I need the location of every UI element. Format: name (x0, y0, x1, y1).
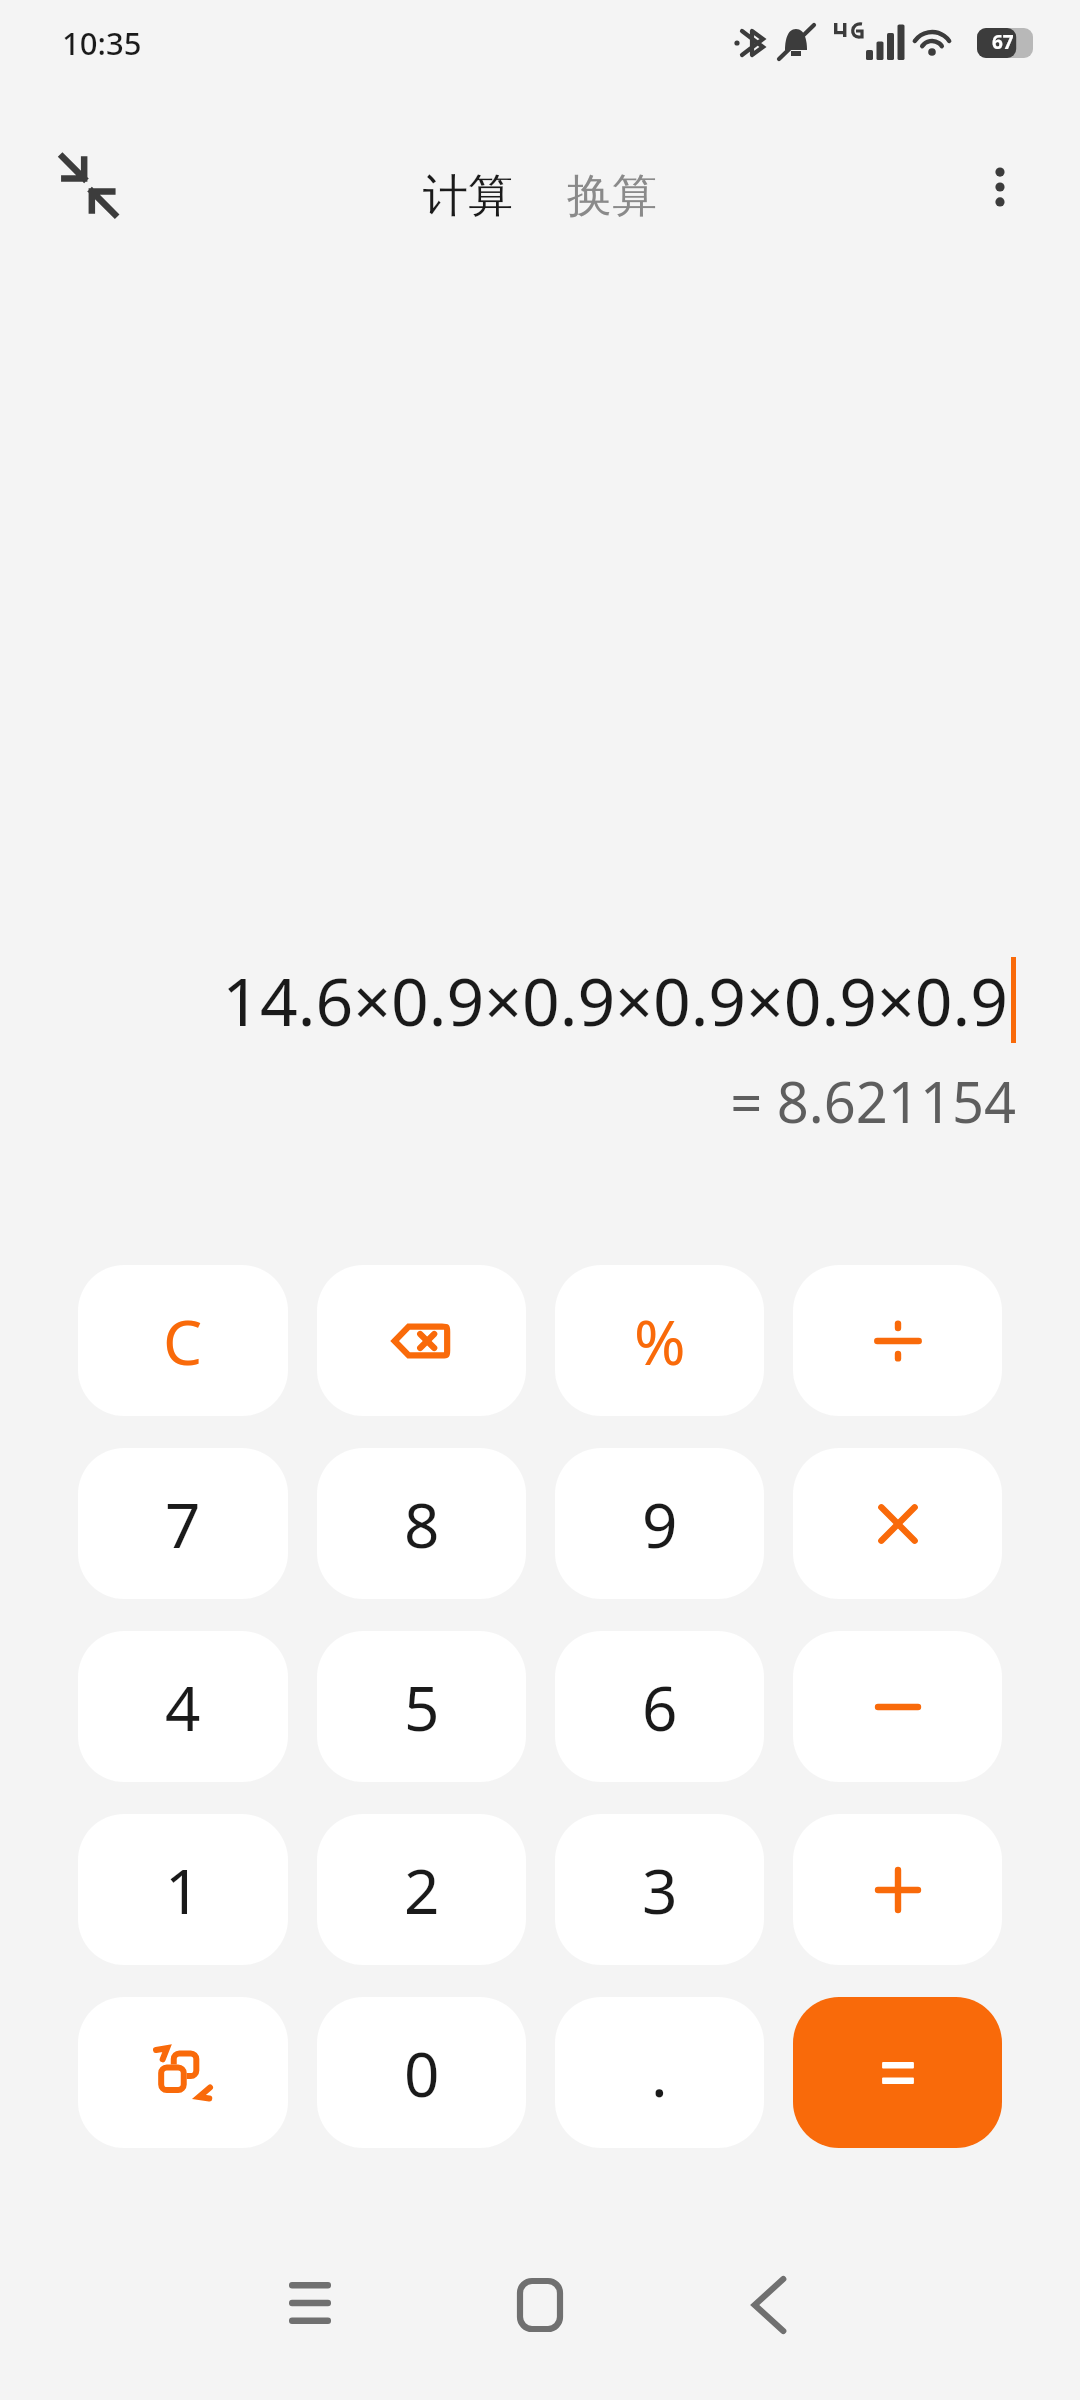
button[interactable]: 5 (317, 1631, 526, 1782)
button[interactable]: 6 (555, 1631, 764, 1782)
staticText: 14.6×0.9×0.9×0.9×0.9×0.9 (222, 955, 1008, 1045)
button[interactable]: Divide (793, 1265, 1002, 1416)
button[interactable]: Home (480, 2245, 600, 2365)
staticText: 2 (404, 1848, 440, 1932)
staticText: 9 (642, 1482, 678, 1566)
button[interactable]: 计算 (413, 164, 523, 229)
button[interactable]: Back (709, 2245, 829, 2365)
staticText: 换算 (567, 168, 657, 225)
staticText: % (634, 1299, 686, 1383)
staticText: 4 (165, 1665, 201, 1749)
button[interactable]: . (555, 1997, 764, 2148)
staticText: . (651, 2031, 668, 2115)
staticText: 0 (404, 2031, 440, 2115)
staticText: 3 (642, 1848, 678, 1932)
button[interactable]: 4 (78, 1631, 288, 1782)
staticText: C (163, 1299, 203, 1383)
button[interactable]: 换算 (557, 164, 667, 229)
button[interactable]: Recents (250, 2243, 370, 2363)
button[interactable]: More options (954, 141, 1046, 233)
staticText: 1 (165, 1848, 201, 1932)
button[interactable]: C (78, 1265, 288, 1416)
staticText: = 8.621154 (730, 1063, 1016, 1139)
button[interactable]: 0 (317, 1997, 526, 2148)
button[interactable]: Minus (793, 1631, 1002, 1782)
button[interactable]: 9 (555, 1448, 764, 1599)
button[interactable]: Plus (793, 1814, 1002, 1965)
staticText: 10:35 (62, 22, 142, 64)
button[interactable]: Multiply (793, 1448, 1002, 1599)
staticText: 6 (642, 1665, 678, 1749)
button[interactable]: 1 (78, 1814, 288, 1965)
button[interactable]: % (555, 1265, 764, 1416)
button[interactable]: Backspace (317, 1265, 526, 1416)
button[interactable]: Convert (78, 1997, 288, 2148)
button[interactable]: 7 (78, 1448, 288, 1599)
button[interactable]: 3 (555, 1814, 764, 1965)
staticText: 67 (992, 29, 1014, 55)
staticText: 7 (165, 1482, 201, 1566)
button[interactable]: Equals (793, 1997, 1002, 2148)
staticText: 计算 (423, 168, 513, 225)
button[interactable]: Collapse (40, 137, 136, 233)
staticText: 5 (404, 1665, 440, 1749)
button[interactable]: 2 (317, 1814, 526, 1965)
staticText: 8 (404, 1482, 440, 1566)
button[interactable]: 8 (317, 1448, 526, 1599)
